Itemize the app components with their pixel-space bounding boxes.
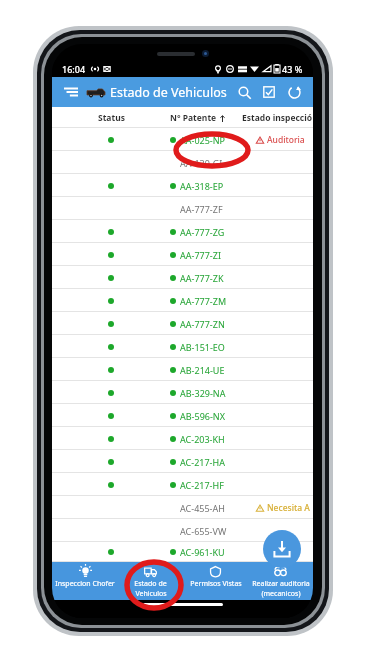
- staticText: AA-777-ZF: [180, 203, 223, 215]
- staticText: AA-777-ZM: [180, 295, 227, 307]
- staticText: Permisos Vistas: [190, 579, 242, 589]
- staticText: 43 %: [282, 63, 303, 75]
- staticText: AA-025-NP: [180, 134, 226, 146]
- button[interactable]: AA-777-ZF: [52, 197, 313, 220]
- staticText: Status: [98, 112, 125, 124]
- staticText: AB-151-EO: [180, 341, 225, 353]
- staticText: AC-217-HA: [180, 456, 225, 468]
- button[interactable]: AC-961-KU: [52, 542, 313, 562]
- staticText: Vehiculos: [135, 589, 167, 599]
- staticText: AA-777-ZI: [180, 249, 221, 261]
- staticText: Auditoria ur: [267, 134, 313, 146]
- button[interactable]: Realizar auditoria: [248, 562, 313, 600]
- button[interactable]: Buscar: [234, 82, 254, 102]
- staticText: Necesita A: [267, 502, 310, 514]
- button[interactable]: AA-777-ZK: [52, 266, 313, 289]
- staticText: AC-655-VW: [180, 525, 227, 537]
- staticText: AA-777-ZK: [180, 272, 224, 284]
- button[interactable]: AA-139-GI: [52, 151, 313, 174]
- staticText: AC-217-HF: [180, 479, 224, 491]
- button[interactable]: AA-318-EP: [52, 174, 313, 197]
- button[interactable]: AC-217-HF: [52, 473, 313, 496]
- button[interactable]: AA-025-NP: [52, 128, 313, 151]
- staticText: AB-214-UE: [180, 364, 225, 376]
- button[interactable]: AC-217-HA: [52, 450, 313, 473]
- button[interactable]: Descargar: [263, 530, 301, 568]
- button[interactable]: AA-777-ZI: [52, 243, 313, 266]
- button[interactable]: AA-777-ZN: [52, 312, 313, 335]
- staticText: AB-596-NX: [180, 410, 225, 422]
- staticText: AC-961-KU: [180, 546, 225, 558]
- button[interactable]: Menu: [61, 82, 81, 102]
- staticText: Estado de: [134, 579, 167, 589]
- staticText: AC-203-KH: [180, 433, 225, 445]
- button[interactable]: Inspeccion Chofer: [52, 562, 118, 600]
- button[interactable]: AC-455-AH: [52, 496, 313, 519]
- staticText: Realizar auditoria: [252, 579, 310, 589]
- staticText: AA-777-ZG: [180, 226, 225, 238]
- button[interactable]: AB-214-UE: [52, 358, 313, 381]
- button[interactable]: AB-151-EO: [52, 335, 313, 358]
- button[interactable]: Permisos Vistas: [183, 562, 248, 600]
- staticText: (mecanicos): [261, 589, 301, 599]
- staticText: Estado de Vehiculos: [110, 84, 227, 101]
- button[interactable]: AB-329-NA: [52, 381, 313, 404]
- staticText: AA-318-EP: [180, 180, 224, 192]
- staticText: N° Patente: [170, 112, 217, 124]
- button[interactable]: Actualizar: [284, 82, 304, 102]
- staticText: AB-329-NA: [180, 387, 226, 399]
- staticText: AA-777-ZN: [180, 318, 225, 330]
- staticText: Estado inspecció: [242, 112, 313, 124]
- staticText: 16:04: [62, 63, 86, 75]
- button[interactable]: Estado de: [118, 562, 183, 600]
- button[interactable]: AA-777-ZM: [52, 289, 313, 312]
- button[interactable]: AC-203-KH: [52, 427, 313, 450]
- staticText: Inspeccion Chofer: [55, 579, 115, 589]
- button[interactable]: AC-655-VW: [52, 519, 313, 542]
- staticText: AC-455-AH: [180, 502, 225, 514]
- button[interactable]: AA-777-ZG: [52, 220, 313, 243]
- button[interactable]: AB-596-NX: [52, 404, 313, 427]
- button[interactable]: Seleccionar: [259, 82, 279, 102]
- staticText: AA-139-GI: [180, 157, 223, 169]
